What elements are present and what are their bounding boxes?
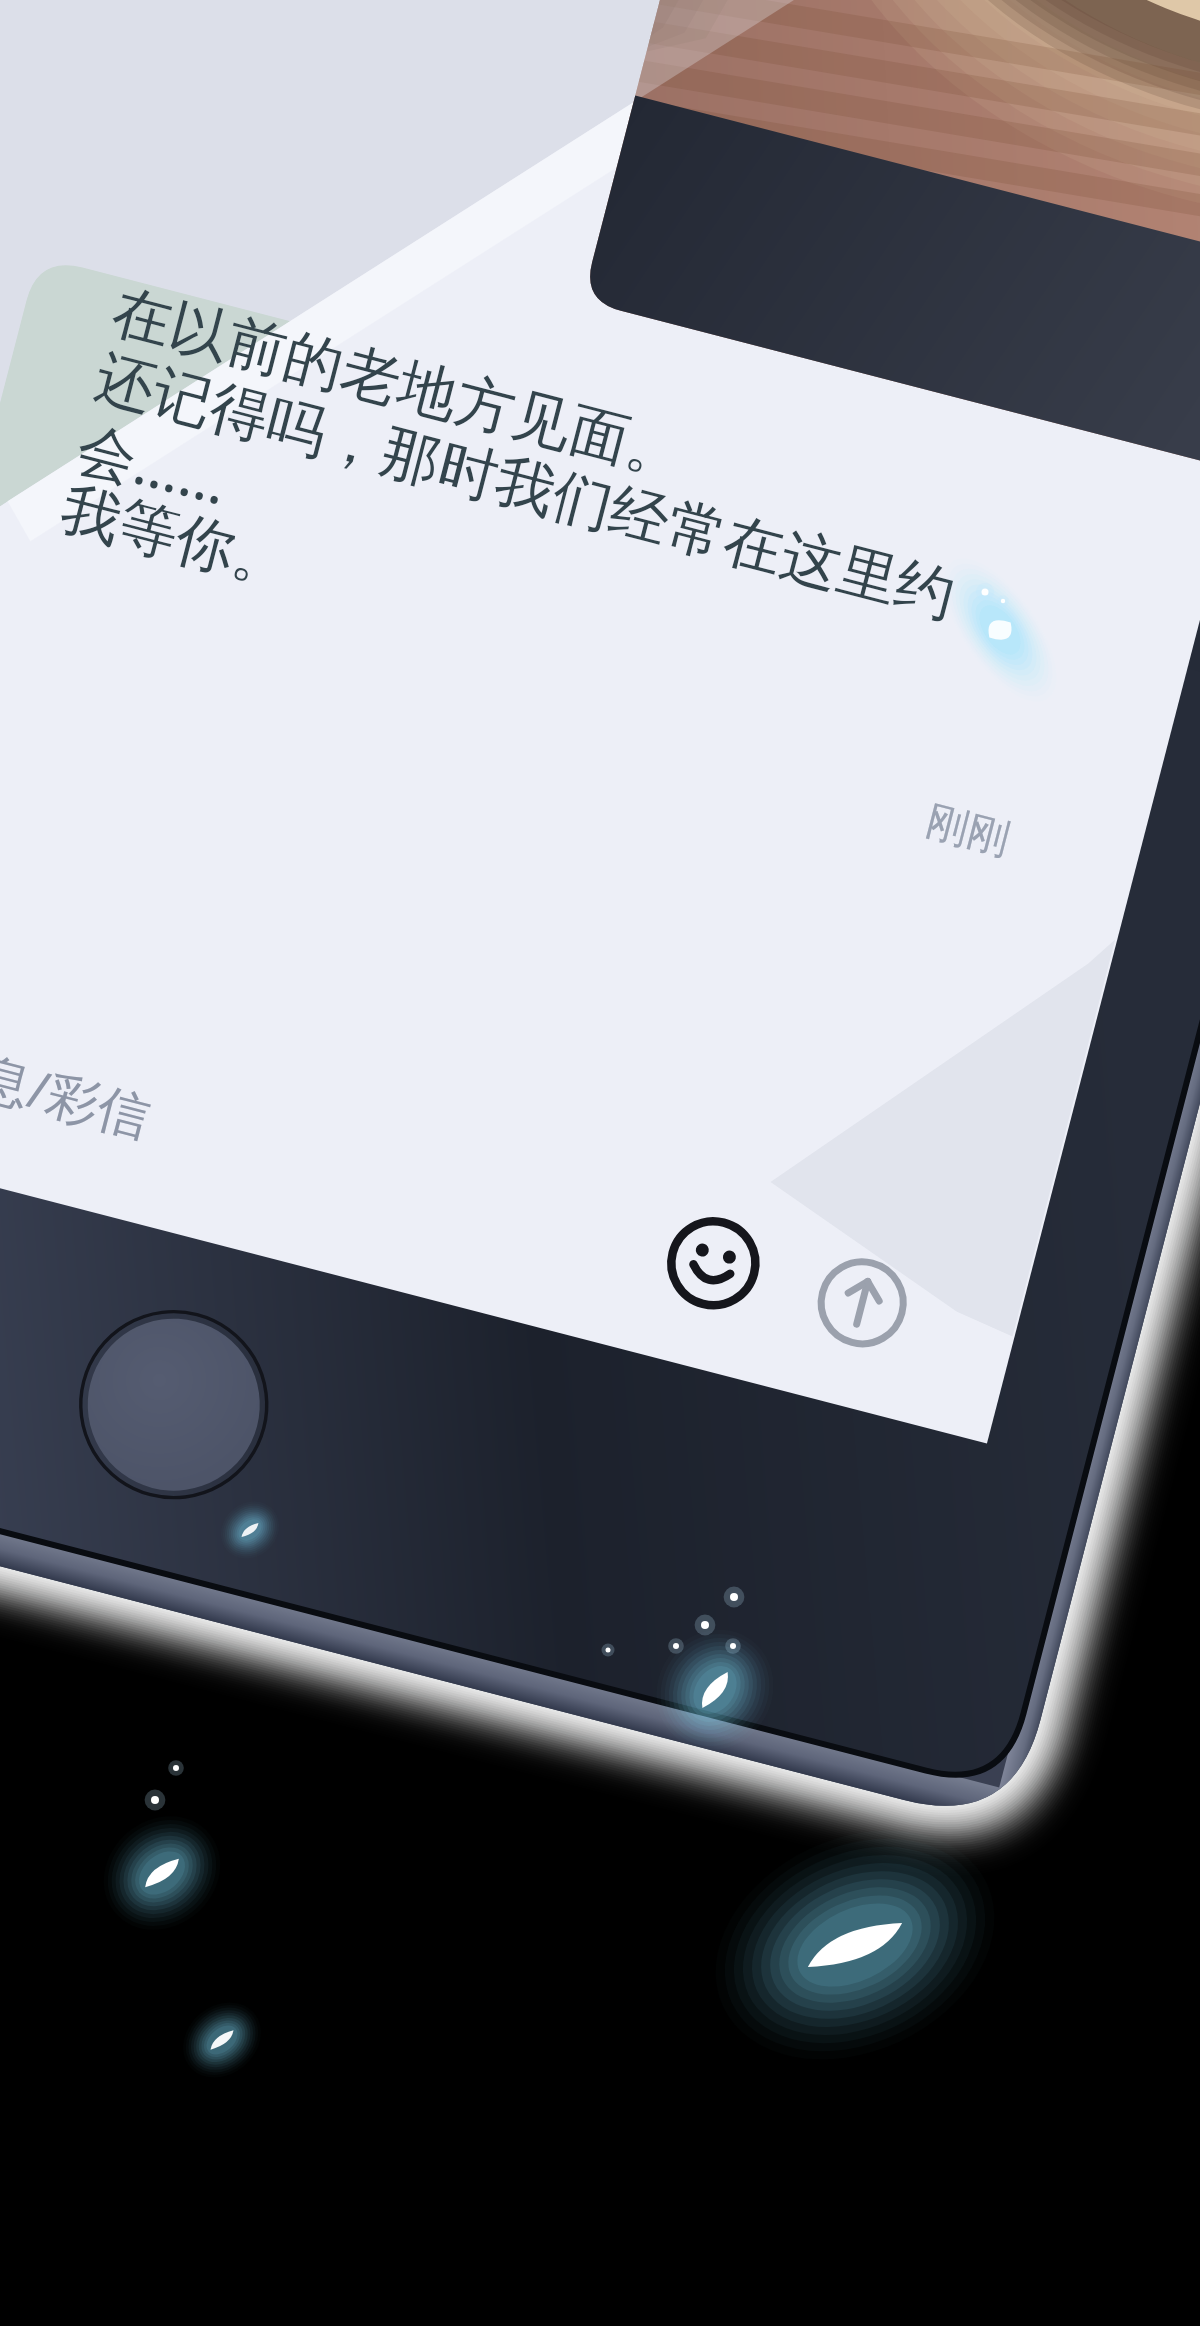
button[interactable]: Chat message on phone xyxy=(0,0,1200,2326)
